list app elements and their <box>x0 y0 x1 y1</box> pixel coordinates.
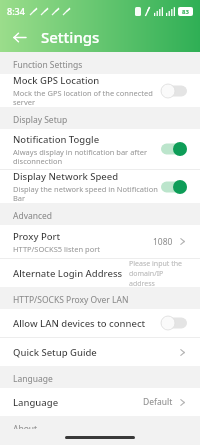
button[interactable]: Mock GPS Location <box>0 74 200 107</box>
staticText: Language <box>13 373 53 385</box>
staticText: Mock the GPS location of the connected s… <box>13 88 161 107</box>
staticText: Allow LAN devices to connect <box>13 317 146 330</box>
button[interactable]: Language <box>0 388 200 416</box>
staticText: Mock GPS Location <box>13 74 100 87</box>
button[interactable]: Proxy Port <box>0 225 200 258</box>
staticText: Default <box>143 396 173 408</box>
button[interactable]: Allow LAN devices to connect <box>0 309 200 337</box>
staticText: Settings <box>41 27 100 47</box>
staticText: 1080 <box>153 236 173 248</box>
staticText: Quick Setup Guide <box>13 346 97 359</box>
staticText: Language <box>13 396 59 409</box>
button[interactable]: Notification Toggle <box>0 129 200 169</box>
button[interactable]: Display Network Speed <box>0 170 200 203</box>
staticText: Display Setup <box>13 114 68 126</box>
staticText: 83 <box>182 8 189 16</box>
staticText: Proxy Port <box>13 230 61 243</box>
staticText: 8:34 <box>7 5 25 17</box>
staticText: Display the network speed in Notificatio… <box>13 184 161 203</box>
staticText: Alternate Login Address <box>13 267 123 280</box>
staticText: Please input the domain/IP address <box>129 259 187 287</box>
staticText: Function Settings <box>13 59 83 71</box>
staticText: HTTP/SOCKS5 listen port <box>13 244 101 254</box>
staticText: About <box>13 423 38 429</box>
staticText: HTTP/SOCKS Proxy Over LAN <box>13 294 129 306</box>
button[interactable]: Alternate Login Address <box>0 259 200 287</box>
staticText: Always display in notification bar after… <box>13 147 161 166</box>
button[interactable]: Quick Setup Guide <box>0 338 200 366</box>
staticText: Notification Toggle <box>13 133 100 146</box>
staticText: Advanced <box>13 210 53 222</box>
button[interactable]: Back <box>6 24 32 50</box>
staticText: Display Network Speed <box>13 170 119 183</box>
